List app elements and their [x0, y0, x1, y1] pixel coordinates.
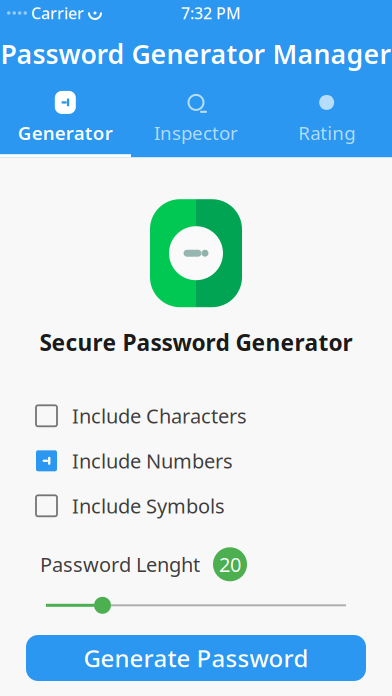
staticText: Include Numbers — [72, 447, 233, 474]
button[interactable]: Include Symbols — [0, 483, 392, 528]
button[interactable]: Generate Password — [26, 635, 366, 681]
staticText: Carrier — [31, 2, 84, 24]
staticText: Inspector — [154, 120, 238, 145]
button[interactable]: Include Numbers — [0, 438, 392, 483]
staticText: 7:32 PM — [181, 2, 241, 24]
staticText: Password Lenght — [40, 551, 200, 578]
button[interactable]: Generator — [0, 84, 131, 154]
staticText: Include Symbols — [72, 492, 225, 519]
staticText: Include Characters — [72, 402, 247, 429]
staticText: Secure Password Generator — [39, 327, 352, 357]
staticText: Password Generator Manager — [0, 36, 391, 71]
button[interactable]: Inspector — [131, 84, 261, 154]
button[interactable]: Include Characters — [0, 393, 392, 438]
staticText: Generate Password — [83, 642, 308, 674]
button[interactable]: Rating — [261, 84, 392, 154]
staticText: Generator — [18, 120, 113, 145]
staticText: 20 — [219, 551, 241, 578]
staticText: Rating — [298, 120, 355, 145]
